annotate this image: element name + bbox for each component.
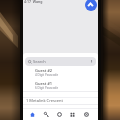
staticText: Guest #2 [35, 68, 53, 73]
staticText: 6 Digit Passcode [35, 86, 59, 90]
staticText: 1 Metalink Crescent [26, 98, 63, 103]
button[interactable] [42, 110, 50, 118]
button[interactable] [85, 0, 97, 11]
button[interactable] [68, 110, 76, 118]
button[interactable] [28, 110, 36, 118]
button[interactable]: Guest #1 [23, 80, 98, 91]
button[interactable]: 1 Metalink Crescent [23, 96, 98, 105]
button[interactable]: Search [25, 57, 96, 66]
staticText: Guest #1 [35, 81, 53, 86]
staticText: 4 Digit Passcode [35, 73, 59, 77]
button[interactable] [82, 110, 90, 118]
staticText: Search [33, 59, 46, 64]
button[interactable]: Guest #2 [23, 67, 98, 78]
staticText: 4:17 Wang [24, 0, 43, 4]
button[interactable] [55, 110, 63, 118]
